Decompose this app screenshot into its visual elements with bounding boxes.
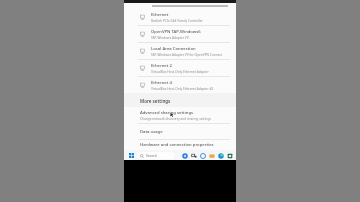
other: Network adapter xyxy=(140,65,146,71)
other: Network adapter xyxy=(140,14,146,20)
staticText: OpenVPN TAP-Windows6 xyxy=(151,29,201,35)
staticText: TAP-Windows Adapter V9 xyxy=(151,36,189,40)
button[interactable]: Advanced sharing settings xyxy=(124,107,236,124)
button[interactable]: Chat xyxy=(198,151,207,160)
staticText: VirtualBox Host-Only Ethernet Adapter xyxy=(151,70,209,74)
button[interactable]: Excel xyxy=(225,151,234,160)
button[interactable]: Task view xyxy=(189,151,198,160)
other: Network adapter xyxy=(140,82,146,88)
staticText: Ethernet 2 xyxy=(151,63,172,69)
button[interactable]: Start xyxy=(127,151,135,159)
staticText: Local Area Connection xyxy=(151,46,196,52)
staticText: Change network discovery and sharing set… xyxy=(140,117,212,121)
button[interactable]: Microsoft Edge xyxy=(216,151,225,160)
button[interactable]: Network adapter xyxy=(124,9,236,26)
staticText: Search xyxy=(146,153,157,158)
button[interactable]: Search xyxy=(137,152,175,159)
staticText: VirtualBox Host-Only Ethernet Adapter #2 xyxy=(151,87,214,91)
button[interactable]: Network adapter xyxy=(124,43,236,60)
staticText: Ethernet 4 xyxy=(151,80,172,86)
staticText: Advanced sharing settings xyxy=(140,110,194,116)
staticText: Ethernet xyxy=(151,12,169,18)
staticText: Realtek PCIe GbE Family Controller xyxy=(151,19,203,23)
staticText: Hardware and connection properties xyxy=(140,142,214,148)
other: Network adapter xyxy=(140,31,146,37)
button[interactable]: Network adapter xyxy=(124,60,236,77)
staticText: TAP-Windows Adapter V9 for OpenVPN Conne… xyxy=(151,53,223,57)
staticText: Data usage xyxy=(140,129,163,135)
button[interactable]: File Explorer xyxy=(207,151,216,160)
button[interactable]: Network adapter xyxy=(124,26,236,43)
other: Network adapter xyxy=(140,48,146,54)
button[interactable]: Network adapter xyxy=(124,77,236,93)
button[interactable]: Hardware and connection properties xyxy=(124,140,236,150)
button[interactable]: Copilot xyxy=(180,151,189,160)
staticText: More settings xyxy=(140,98,171,104)
button[interactable]: Data usage xyxy=(124,124,236,140)
